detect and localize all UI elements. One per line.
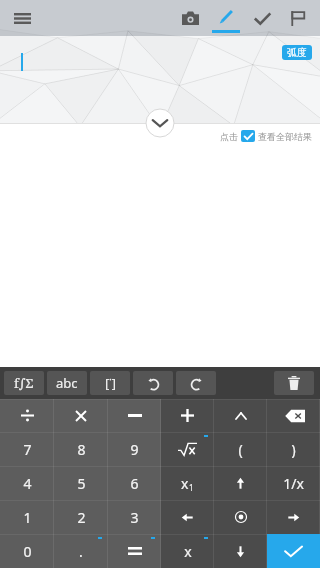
button[interactable]: Move up [214,466,267,500]
button[interactable]: 9 [108,432,161,466]
button[interactable]: Redo [176,371,216,395]
staticText: 6 [130,474,139,493]
button[interactable]: 点击 [220,130,312,142]
button[interactable]: 1/x [267,466,320,500]
button[interactable]: 8 [54,432,108,466]
staticText: 1 [23,508,32,527]
button[interactable]: 0 [0,534,54,568]
button[interactable]: 1 [0,500,54,534]
button[interactable]: 2 [54,500,108,534]
button[interactable]: ( [214,432,267,466]
staticText: 点击 [220,131,238,142]
button[interactable]: Power [214,399,267,432]
button[interactable]: Multiply [54,399,108,432]
button[interactable]: Variable subscript [161,466,214,500]
staticText: . [79,542,83,561]
staticText: x [184,542,192,561]
button[interactable]: Brackets [90,371,130,395]
button[interactable]: Plus [161,399,214,432]
button[interactable]: Move left [161,500,214,534]
staticText: 弧度 [287,46,307,59]
staticText: f∫Σ [14,374,34,392]
button[interactable]: Letters [47,371,87,395]
button[interactable]: Camera [172,0,208,36]
staticText: ( [238,440,243,459]
button[interactable]: 4 [0,466,54,500]
button[interactable]: Draw [208,0,244,36]
button[interactable]: ) [267,432,320,466]
staticText: 3 [130,508,139,527]
button[interactable]: = [108,534,161,568]
button[interactable]: Cursor position [214,500,267,534]
button[interactable]: 5 [54,466,108,500]
staticText: 9 [130,440,139,459]
staticText: ) [291,440,296,459]
button[interactable]: Flag [280,0,316,36]
button[interactable]: Undo [133,371,173,395]
staticText: 1/x [283,474,304,493]
button[interactable]: 3 [108,500,161,534]
button[interactable]: Expand [145,108,175,138]
button[interactable]: Square root [161,432,214,466]
button[interactable]: Divide [0,399,54,432]
button[interactable]: . [54,534,108,568]
button[interactable]: 弧度 [282,45,312,60]
button[interactable]: 6 [108,466,161,500]
staticText: 7 [23,440,32,459]
staticText: abc [56,374,78,392]
button[interactable]: Submit [267,534,320,568]
button[interactable]: Move right [267,500,320,534]
staticText: [˙] [105,374,116,392]
staticText: 8 [77,440,86,459]
staticText: 1 [189,482,194,493]
staticText: 查看全部结果 [258,131,312,142]
button[interactable]: Menu [7,3,37,33]
staticText: x [181,474,189,493]
button[interactable]: Clear all [274,371,314,395]
button[interactable]: Confirm [244,0,280,36]
button[interactable]: 7 [0,432,54,466]
staticText: 0 [23,542,32,561]
button[interactable]: Minus [108,399,161,432]
staticText: 4 [23,474,32,493]
staticText: 2 [77,508,86,527]
button[interactable]: Backspace [267,399,320,432]
button[interactable]: Functions [4,371,44,395]
button[interactable]: x [161,534,214,568]
staticText: 5 [77,474,86,493]
button[interactable]: Move down [214,534,267,568]
